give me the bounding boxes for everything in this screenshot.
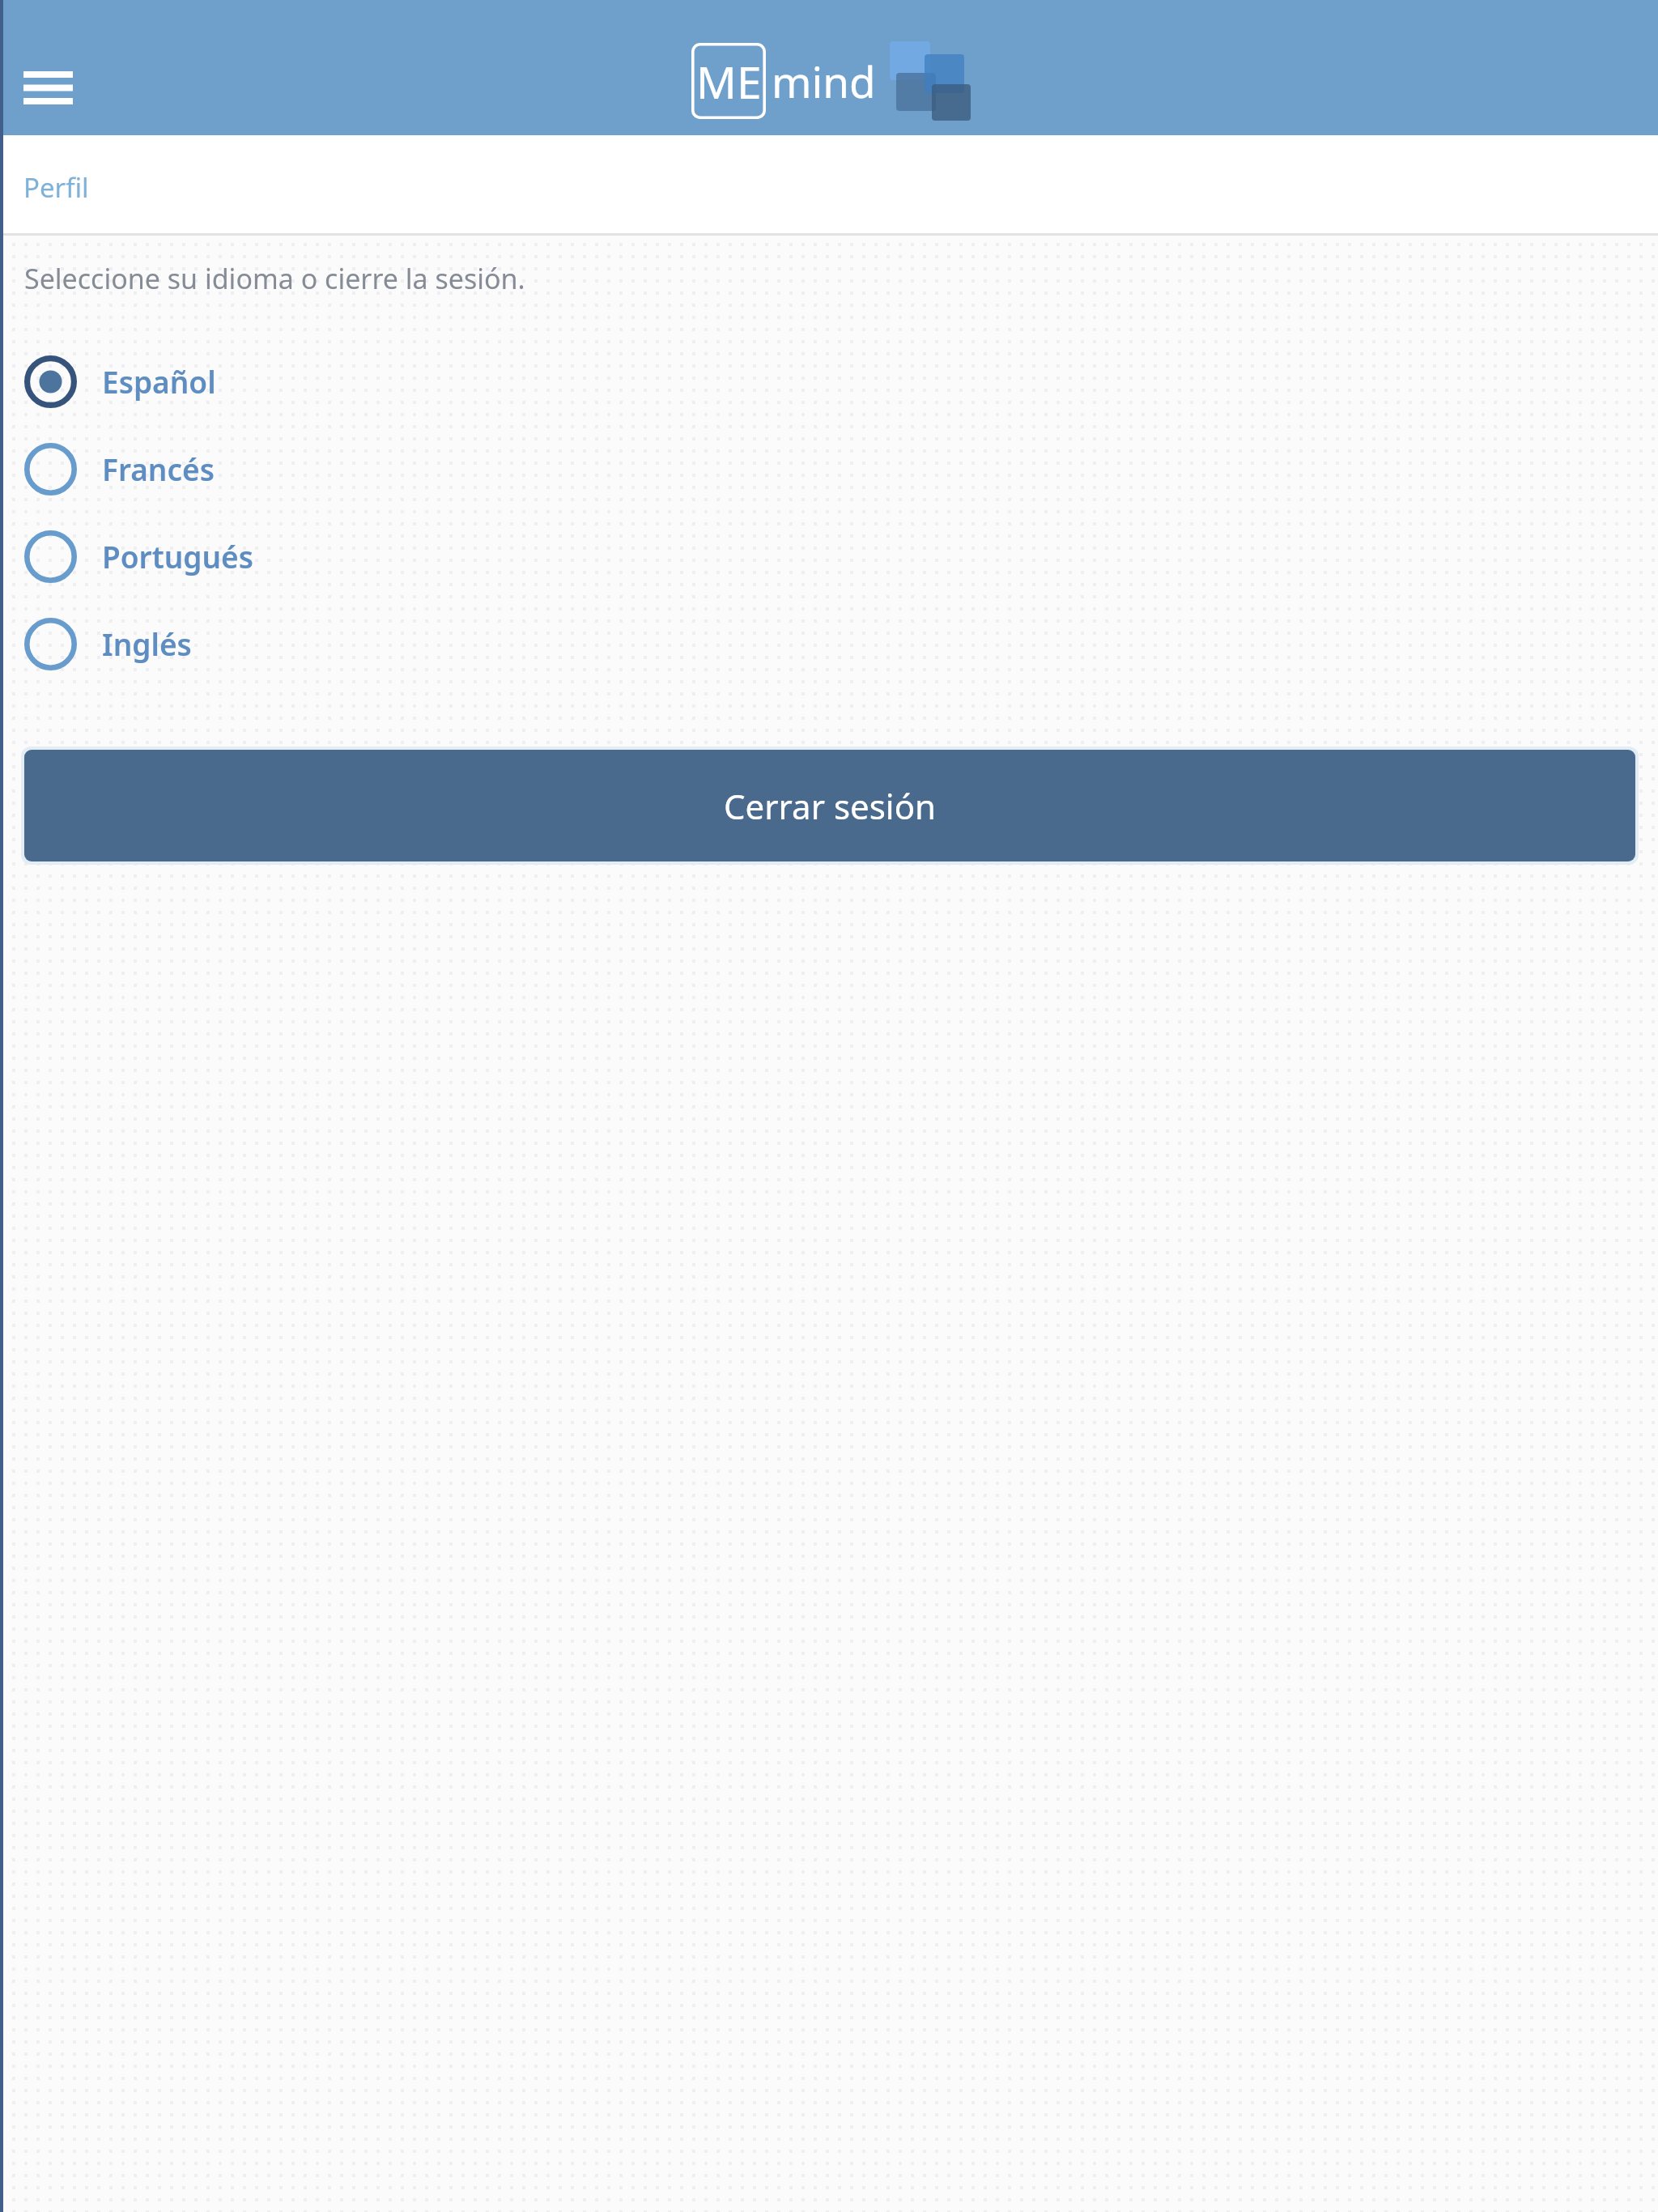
button[interactable]: Menu [15, 35, 81, 100]
button[interactable]: Cerrar sesión [24, 750, 1635, 861]
staticText: Cerrar sesión [724, 783, 937, 829]
button[interactable]: Inglés [0, 600, 1658, 687]
staticText: mind [772, 52, 876, 110]
staticText: Francés [102, 449, 215, 489]
staticText: Español [102, 361, 216, 402]
button[interactable]: Francés [0, 425, 1658, 513]
staticText: ME [696, 51, 762, 112]
button[interactable]: Perfil [23, 169, 89, 206]
button[interactable]: Portugués [0, 513, 1658, 600]
staticText: Portugués [102, 536, 253, 576]
staticText: Inglés [102, 623, 192, 664]
staticText: Seleccione su idioma o cierre la sesión. [24, 260, 525, 297]
button[interactable]: Español [0, 338, 1658, 425]
